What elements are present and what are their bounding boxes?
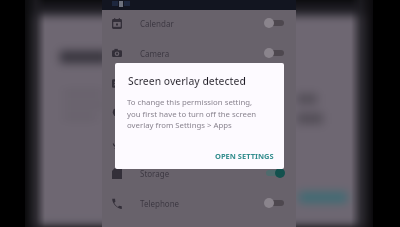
staticText: Location — [140, 108, 173, 119]
button[interactable]: Telephone — [102, 188, 296, 218]
button[interactable]: Contacts — [102, 68, 296, 98]
button[interactable]: Calendar — [102, 8, 296, 38]
staticText: Telephone — [140, 198, 180, 209]
button[interactable]: Microphone — [102, 128, 296, 158]
staticText: Calendar — [140, 18, 174, 29]
staticText: Screen overlay detected — [128, 74, 246, 88]
button[interactable]: OPEN SETTINGS — [209, 146, 280, 166]
staticText: Contacts — [140, 78, 173, 89]
button[interactable]: Camera — [102, 38, 296, 68]
button[interactable]: Storage — [102, 158, 296, 188]
staticText: Camera — [140, 48, 170, 59]
staticText: To change this permission setting, you f… — [127, 97, 257, 130]
staticText: Storage — [140, 168, 170, 179]
button[interactable]: Location — [102, 98, 296, 128]
staticText: OPEN SETTINGS — [215, 151, 274, 161]
